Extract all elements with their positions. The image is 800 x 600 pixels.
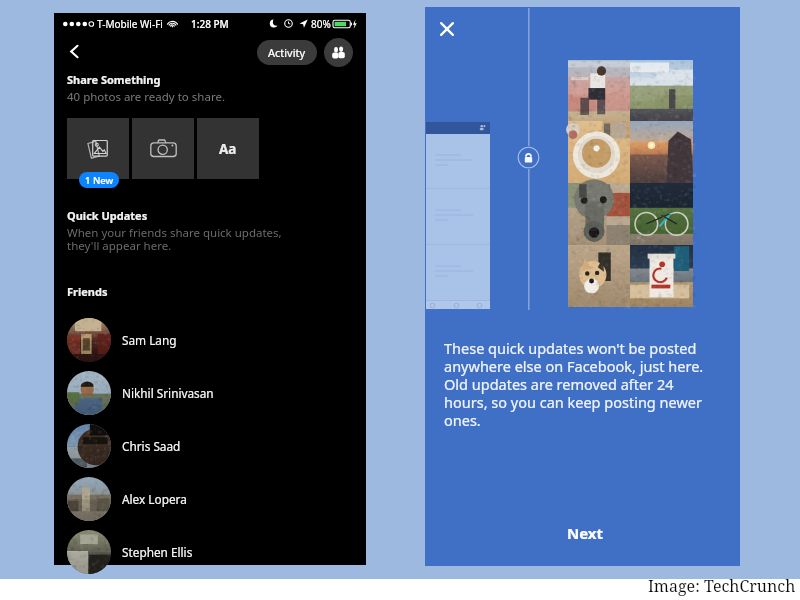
button[interactable]: Nikhil Srinivasan xyxy=(54,366,366,419)
button[interactable]: Take a photo xyxy=(132,118,194,179)
staticText: Image: TechCrunch xyxy=(648,575,796,597)
button[interactable]: Back xyxy=(60,37,88,65)
staticText: Quick Updates xyxy=(67,208,148,223)
button[interactable]: Close xyxy=(434,16,460,42)
staticText: 40 photos are ready to share. xyxy=(67,89,225,105)
button[interactable]: 1 New xyxy=(79,172,119,188)
button[interactable]: Friends xyxy=(324,38,353,67)
button[interactable]: Activity xyxy=(257,40,317,65)
staticText: Next xyxy=(567,523,604,543)
button[interactable]: Aa xyxy=(197,118,259,179)
staticText: 1:28 PM xyxy=(191,17,229,30)
staticText: Friends xyxy=(67,284,108,299)
button[interactable]: Alex Lopera xyxy=(54,472,366,525)
staticText: T-Mobile Wi-Fi xyxy=(97,17,163,30)
staticText: Share Something xyxy=(67,72,161,87)
button[interactable]: Next xyxy=(551,516,620,550)
staticText: Sam Lang xyxy=(122,332,177,348)
staticText: When your friends share quick updates, t… xyxy=(67,225,282,254)
button[interactable]: Sam Lang xyxy=(54,313,366,366)
staticText: 80% xyxy=(311,17,331,30)
staticText: Chris Saad xyxy=(122,438,181,454)
staticText: Stephen Ellis xyxy=(122,544,193,560)
staticText: Aa xyxy=(219,140,237,158)
staticText: These quick updates won't be posted anyw… xyxy=(444,338,716,430)
staticText: Activity xyxy=(268,45,306,60)
button[interactable]: Share photos xyxy=(67,118,129,179)
button[interactable]: Stephen Ellis xyxy=(54,525,366,578)
staticText: 1 New xyxy=(85,174,114,187)
staticText: Alex Lopera xyxy=(122,491,187,507)
staticText: Nikhil Srinivasan xyxy=(122,385,214,401)
button[interactable]: Chris Saad xyxy=(54,419,366,472)
